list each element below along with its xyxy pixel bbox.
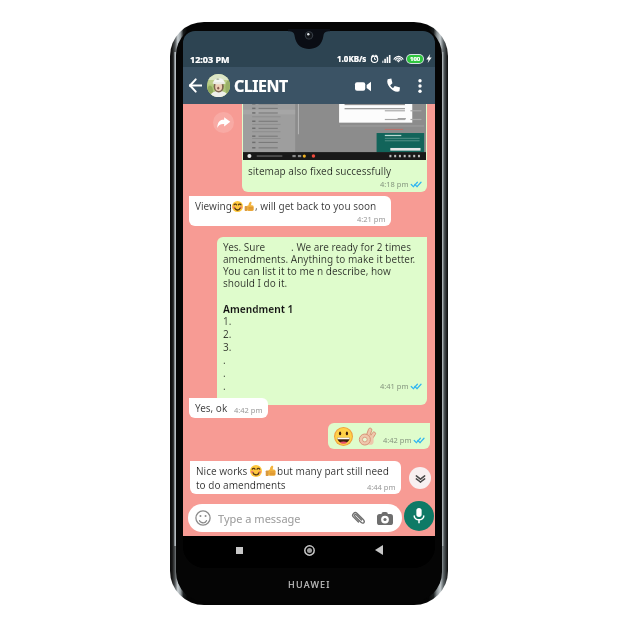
staticText: 4:41 pm	[380, 381, 409, 391]
staticText: 4:42 pm	[383, 435, 412, 445]
button[interactable]: Back	[185, 76, 204, 95]
staticText: CLIENT	[234, 75, 348, 97]
button[interactable]: Recents	[225, 536, 253, 564]
button[interactable]: Yes. Sure . We are ready for 2 times ame…	[217, 237, 427, 405]
button[interactable]: Attach	[349, 509, 367, 527]
staticText: but many part still need	[277, 464, 389, 478]
button[interactable]: Scroll to bottom	[409, 467, 431, 489]
staticText: 4:42 pm	[234, 405, 263, 415]
staticText: to do amendments	[196, 478, 286, 492]
staticText: 4:18 pm	[380, 179, 409, 189]
staticText: Yes. Sure . We are ready for 2 times ame…	[223, 240, 416, 290]
staticText: 1. 2. 3. . . .	[223, 302, 232, 393]
button[interactable]: Camera	[376, 509, 394, 527]
button[interactable]: Call	[378, 71, 408, 101]
button[interactable]: Voice message	[404, 501, 434, 531]
button[interactable]: 4:42 pm	[328, 423, 430, 449]
staticText: Viewing	[195, 199, 232, 213]
staticText: 100	[410, 55, 421, 63]
button[interactable]: More options	[408, 74, 432, 98]
staticText: Type a message	[218, 511, 349, 526]
staticText: HUAWEI	[288, 578, 331, 590]
staticText: 1.0KB/s	[337, 53, 367, 64]
button[interactable]: Nice works	[190, 461, 401, 494]
staticText: 12:03 PM	[190, 53, 230, 65]
button[interactable]: Yes, ok	[189, 398, 268, 418]
button[interactable]: Back	[365, 536, 393, 564]
staticText: , will get back to you soon	[255, 199, 377, 213]
staticText: Nice works	[196, 464, 250, 478]
staticText: sitemap also fixed successfully	[248, 164, 392, 178]
button[interactable]: Video call	[348, 71, 378, 101]
button[interactable]: Forward	[213, 112, 234, 133]
staticText: Amendment 1	[223, 302, 294, 393]
button[interactable]: Home	[295, 536, 323, 564]
staticText: 4:21 pm	[357, 214, 386, 224]
staticText: 4:44 pm	[367, 482, 396, 492]
button[interactable]: Type a message	[188, 504, 402, 532]
staticText: Yes, ok	[195, 401, 228, 415]
button[interactable]: Viewing	[189, 196, 391, 226]
button[interactable]: Contact photo	[207, 74, 230, 97]
